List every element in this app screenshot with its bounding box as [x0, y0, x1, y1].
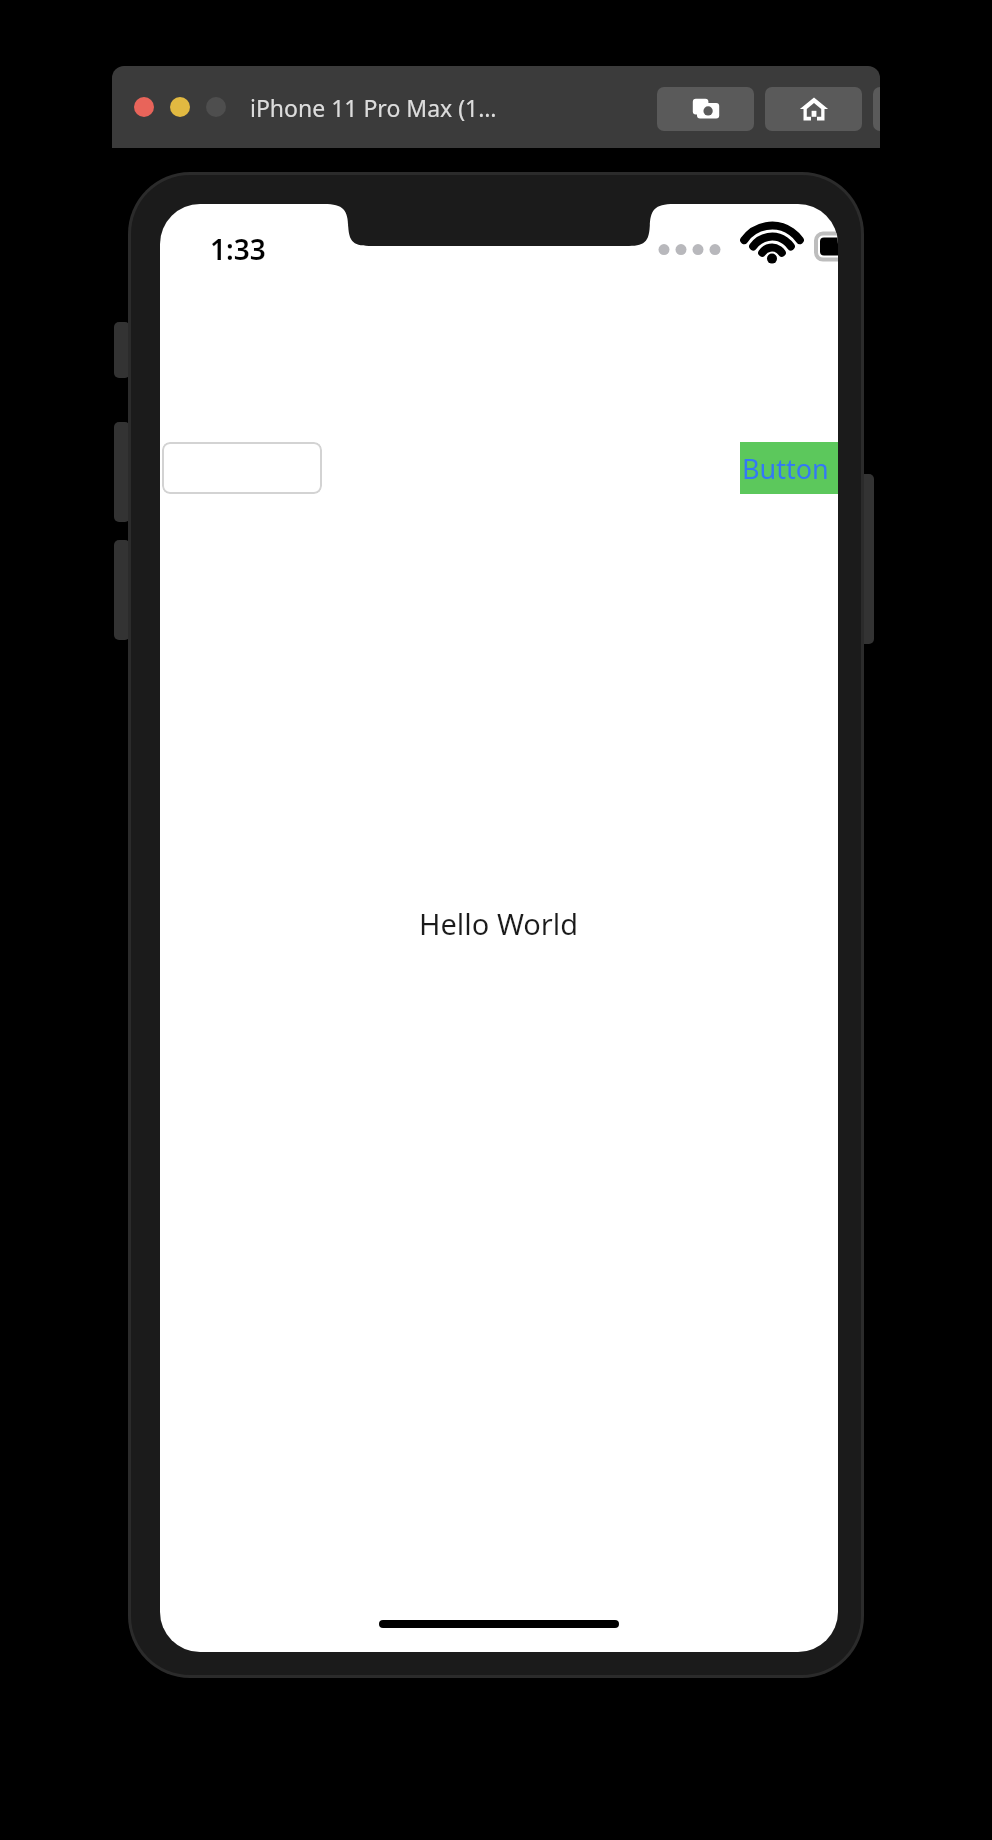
staticText: Hello World: [419, 904, 579, 943]
button[interactable]: Zoom: [206, 97, 226, 117]
button[interactable]: Screenshot: [657, 87, 754, 131]
button[interactable]: Button: [740, 442, 838, 494]
staticText: Button: [742, 450, 829, 487]
button[interactable]: Close: [134, 97, 154, 117]
button[interactable]: Text field: [162, 442, 322, 494]
button[interactable]: Minimize: [170, 97, 190, 117]
button[interactable]: Home: [765, 87, 862, 131]
button[interactable]: Rotate: [873, 87, 880, 131]
staticText: 1:33: [210, 230, 266, 268]
staticText: iPhone 11 Pro Max (1…: [250, 92, 497, 123]
